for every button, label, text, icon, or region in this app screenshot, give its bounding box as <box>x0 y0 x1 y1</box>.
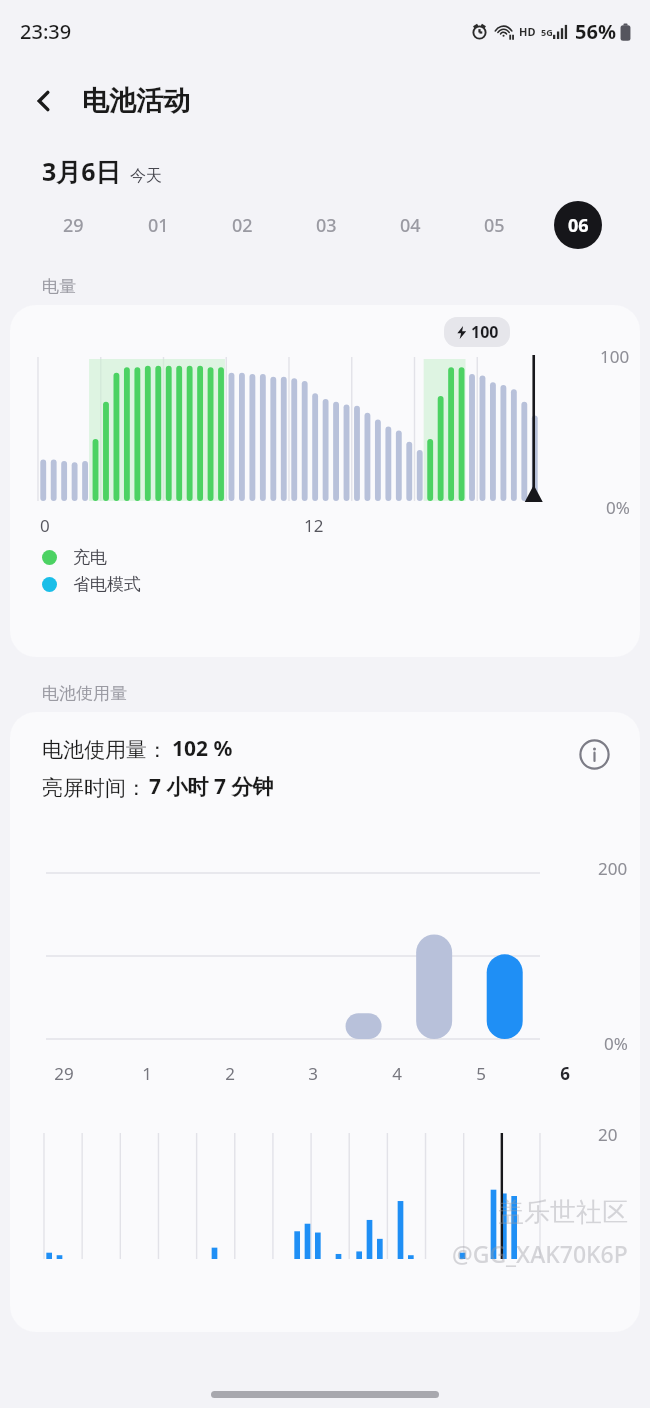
staticText: 3月6日 <box>42 154 121 188</box>
staticText: 29 <box>54 1062 74 1085</box>
button[interactable]: 03 <box>284 188 368 262</box>
staticText: 省电模式 <box>73 574 141 595</box>
staticText: 6 <box>560 1062 570 1085</box>
staticText: 12 <box>304 514 324 537</box>
button[interactable]: 100 <box>10 305 640 657</box>
staticText: 电池使用量 <box>42 683 127 704</box>
staticText: 电池活动 <box>82 84 190 118</box>
staticText: 4 <box>392 1062 402 1085</box>
staticText: 20 <box>598 1123 618 1146</box>
staticText: 7 小时 7 分钟 <box>149 772 274 801</box>
staticText: 0% <box>606 496 630 519</box>
staticText: 02 <box>232 213 253 238</box>
staticText: 102 % <box>172 734 233 763</box>
staticText: 23:39 <box>20 18 72 45</box>
button[interactable]: Back <box>18 75 70 127</box>
staticText: 亮屏时间： <box>42 775 147 801</box>
staticText: 03 <box>316 213 337 238</box>
staticText: 0% <box>604 1032 628 1055</box>
button[interactable]: 04 <box>368 188 452 262</box>
staticText: 01 <box>148 213 169 238</box>
button[interactable]: 02 <box>200 188 284 262</box>
staticText: 1 <box>142 1062 152 1085</box>
staticText: 0 <box>40 514 50 537</box>
staticText: 56% <box>575 18 616 45</box>
staticText: 电量 <box>42 276 76 297</box>
staticText: 电池使用量： <box>42 737 168 763</box>
staticText: 5G <box>541 26 553 38</box>
staticText: 100 <box>471 321 499 343</box>
staticText: 盖乐世社区 <box>498 1196 628 1229</box>
staticText: 06 <box>568 213 589 238</box>
staticText: HD <box>519 24 536 39</box>
staticText: 3 <box>308 1062 318 1085</box>
staticText: 04 <box>400 213 421 238</box>
staticText: 05 <box>484 213 505 238</box>
staticText: 5 <box>476 1062 486 1085</box>
staticText: @GG_XAK70K6P <box>452 1238 628 1269</box>
staticText: 充电 <box>73 547 107 568</box>
staticText: 今天 <box>130 166 162 186</box>
button[interactable]: 29 <box>30 188 115 262</box>
staticText: 200 <box>598 857 628 880</box>
button[interactable]: 电池使用量： <box>10 712 640 1332</box>
button[interactable]: 06 <box>536 188 620 262</box>
staticText: 29 <box>63 213 84 238</box>
button[interactable]: Info <box>574 734 614 774</box>
staticText: 100 <box>600 345 630 368</box>
staticText: 2 <box>225 1062 235 1085</box>
button[interactable]: 05 <box>452 188 536 262</box>
button[interactable]: 01 <box>115 188 200 262</box>
